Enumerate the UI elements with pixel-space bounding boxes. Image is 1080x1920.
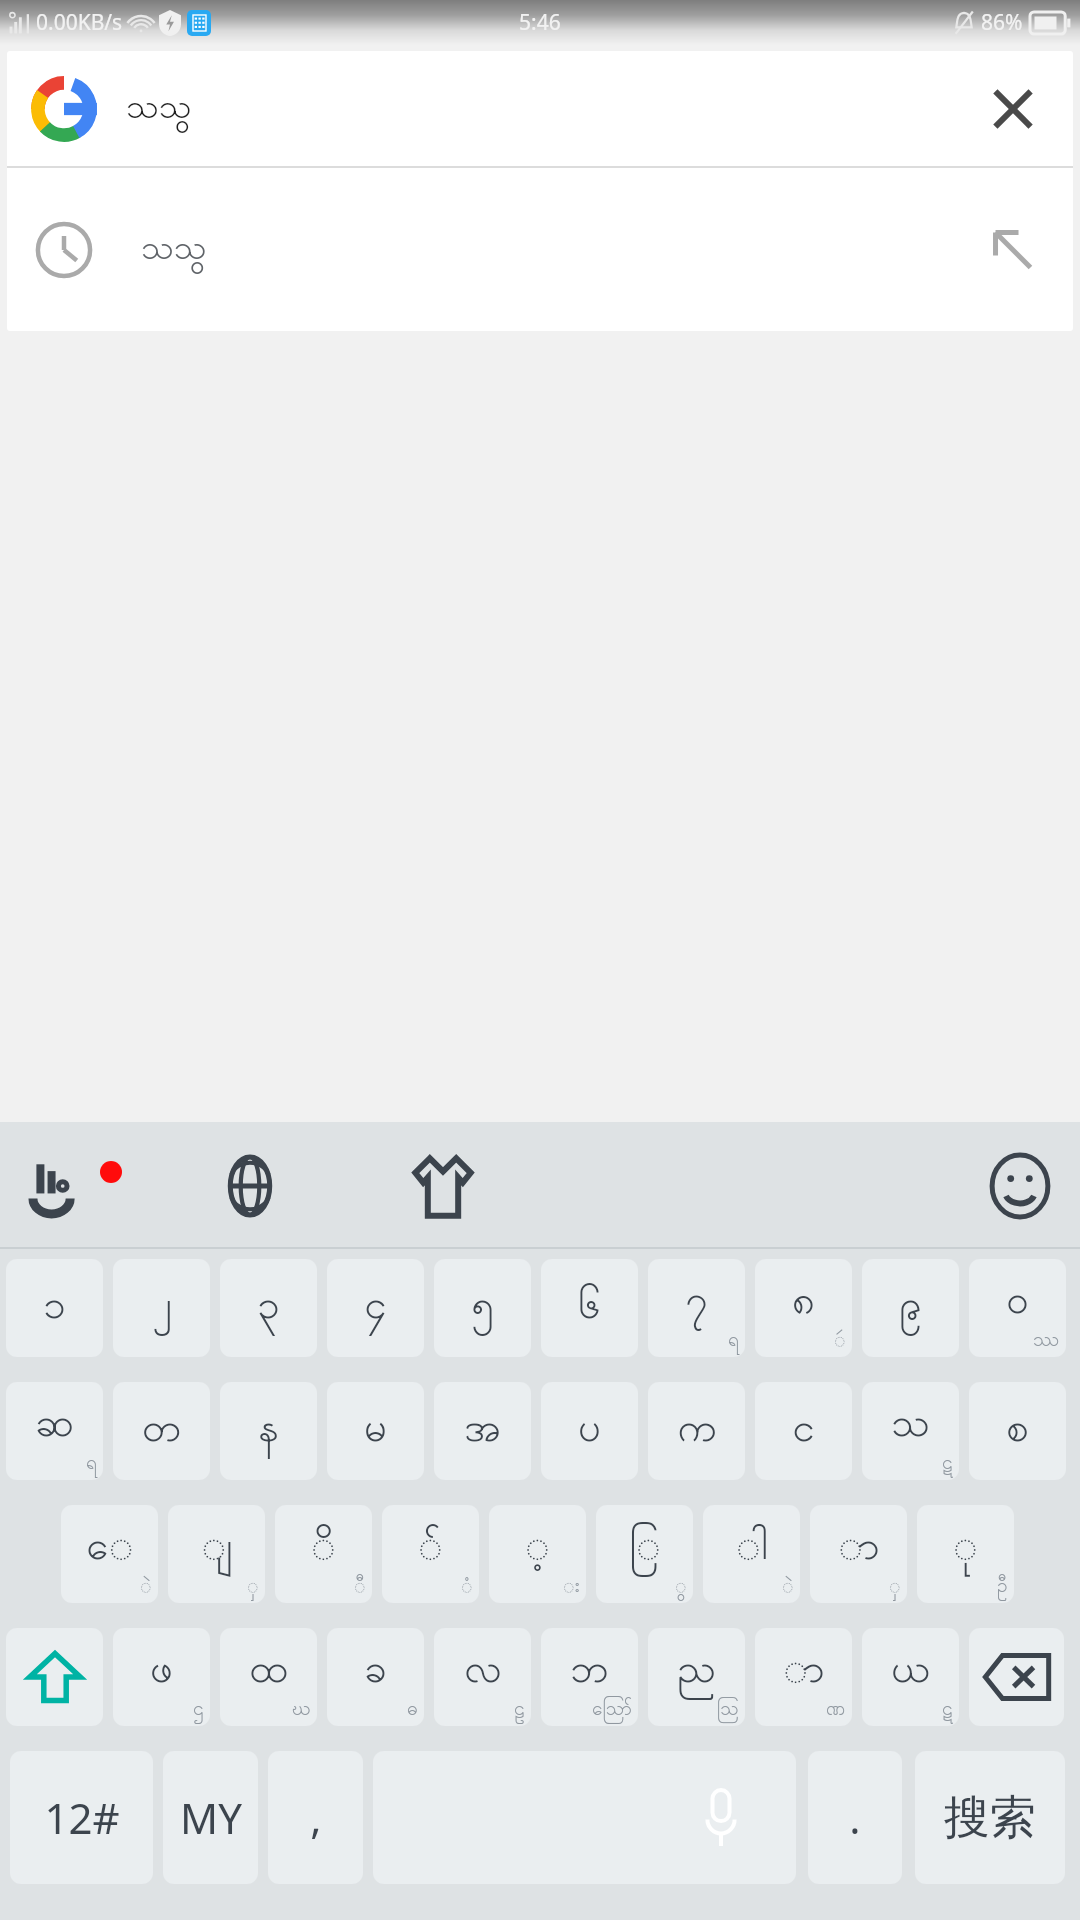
staticText: လ bbox=[464, 1643, 502, 1702]
button[interactable]: စ bbox=[969, 1382, 1066, 1480]
button[interactable]: MY bbox=[163, 1751, 258, 1884]
button[interactable]: ၈ bbox=[755, 1259, 852, 1357]
staticText: တ bbox=[142, 1402, 181, 1461]
staticText: . bbox=[849, 1789, 861, 1846]
button[interactable]: ထ bbox=[220, 1628, 317, 1726]
staticText: ၀ bbox=[1006, 1274, 1029, 1333]
staticText: ၉ bbox=[899, 1279, 922, 1338]
button[interactable]: 12# bbox=[10, 1751, 153, 1884]
button[interactable]: ယ bbox=[862, 1628, 959, 1726]
button[interactable]: ၃ bbox=[220, 1259, 317, 1357]
staticText: 5:46 bbox=[519, 8, 561, 37]
button[interactable]: ါ bbox=[703, 1505, 800, 1603]
staticText: သသွ bbox=[126, 84, 192, 134]
staticText: မ bbox=[364, 1402, 387, 1461]
staticText: ဋ bbox=[942, 1450, 953, 1478]
button[interactable]: မ bbox=[327, 1382, 424, 1480]
button[interactable]: တ bbox=[113, 1382, 210, 1480]
staticText: ၆ bbox=[578, 1279, 601, 1338]
staticText: ပ bbox=[578, 1402, 601, 1461]
staticText: ှ bbox=[889, 1573, 901, 1601]
staticText: ၅ bbox=[471, 1279, 494, 1338]
staticText: ီ bbox=[354, 1573, 366, 1601]
button[interactable]: ည bbox=[648, 1628, 745, 1726]
staticText: ၁ bbox=[43, 1279, 66, 1338]
button[interactable]: ၁ bbox=[6, 1259, 103, 1357]
button[interactable]: ့ bbox=[489, 1505, 586, 1603]
button[interactable]: ိ bbox=[275, 1505, 372, 1603]
button[interactable]: ၉ bbox=[862, 1259, 959, 1357]
button[interactable]: င bbox=[755, 1382, 852, 1480]
staticText: ဖ bbox=[150, 1643, 173, 1702]
button[interactable]: က bbox=[648, 1382, 745, 1480]
staticText: ့ bbox=[525, 1520, 550, 1579]
button[interactable]: လ bbox=[434, 1628, 531, 1726]
staticText: ခ bbox=[364, 1643, 387, 1702]
staticText: န bbox=[258, 1402, 279, 1461]
button[interactable]: ဆ bbox=[6, 1382, 103, 1480]
button[interactable]: ၂ bbox=[113, 1259, 210, 1357]
button[interactable]: ေ bbox=[61, 1505, 158, 1603]
staticText: ု bbox=[953, 1520, 978, 1579]
staticText: ာ bbox=[783, 1643, 825, 1702]
staticText: ိ bbox=[311, 1520, 336, 1579]
staticText: ည bbox=[677, 1643, 716, 1702]
button[interactable]: သသွ bbox=[7, 51, 1073, 166]
staticText: ် bbox=[418, 1520, 443, 1579]
button[interactable]: , bbox=[268, 1751, 363, 1884]
staticText: ာ bbox=[838, 1520, 880, 1579]
staticText: ွ bbox=[675, 1573, 687, 1601]
staticText: ေ bbox=[86, 1520, 134, 1579]
button[interactable]: ခ bbox=[327, 1628, 424, 1726]
button[interactable]: ၅ bbox=[434, 1259, 531, 1357]
button[interactable]: ာ bbox=[810, 1505, 907, 1603]
button[interactable]: Emoji bbox=[974, 1140, 1066, 1232]
staticText: ဩ bbox=[717, 1696, 739, 1724]
button[interactable]: ဘ bbox=[541, 1628, 638, 1726]
staticText: ၃ bbox=[257, 1279, 280, 1338]
button[interactable]: န bbox=[220, 1382, 317, 1480]
button[interactable]: ဖ bbox=[113, 1628, 210, 1726]
staticText: င bbox=[792, 1402, 815, 1461]
staticText: ၂ bbox=[152, 1279, 172, 1338]
button[interactable]: 搜索 bbox=[915, 1751, 1065, 1884]
staticText: ဪ bbox=[592, 1696, 632, 1724]
button[interactable]: ၄ bbox=[327, 1259, 424, 1357]
button[interactable]: ် bbox=[382, 1505, 479, 1603]
button[interactable]: Theme bbox=[395, 1138, 490, 1233]
staticText: 12# bbox=[44, 1789, 120, 1846]
button[interactable]: . bbox=[808, 1751, 902, 1884]
button[interactable]: ာ bbox=[755, 1628, 852, 1726]
staticText: ဴ bbox=[834, 1327, 846, 1355]
staticText: ှ bbox=[247, 1573, 259, 1601]
button[interactable]: အ bbox=[434, 1382, 531, 1480]
staticText: သသွ bbox=[141, 225, 207, 275]
button[interactable]: ြ bbox=[596, 1505, 693, 1603]
button[interactable]: ၆ bbox=[541, 1259, 638, 1357]
button[interactable]: Change language bbox=[205, 1141, 295, 1231]
staticText: ဲ bbox=[782, 1573, 794, 1601]
button[interactable]: ျ bbox=[168, 1505, 265, 1603]
staticText: ယ bbox=[891, 1643, 930, 1702]
button[interactable]: ပ bbox=[541, 1382, 638, 1480]
button[interactable]: Backspace bbox=[969, 1628, 1064, 1726]
button[interactable]: Insert suggestion bbox=[963, 200, 1063, 300]
staticText: ဠ bbox=[514, 1696, 525, 1724]
button[interactable]: ၇ bbox=[648, 1259, 745, 1357]
staticText: 0.00KB/s bbox=[36, 8, 123, 37]
staticText: ဋ bbox=[942, 1696, 953, 1724]
button[interactable]: ု bbox=[917, 1505, 1014, 1603]
staticText: ဆ bbox=[35, 1397, 74, 1456]
button[interactable]: ၀ bbox=[969, 1259, 1066, 1357]
staticText: ြ bbox=[629, 1520, 661, 1579]
button[interactable]: Shift bbox=[6, 1628, 103, 1726]
staticText: ဲ bbox=[140, 1573, 152, 1601]
button[interactable]: Handwriting input bbox=[14, 1141, 104, 1231]
button[interactable]: သသွ bbox=[7, 168, 1073, 331]
button[interactable]: Clear query bbox=[963, 59, 1063, 159]
staticText: ရ bbox=[86, 1450, 97, 1478]
staticText: 86% bbox=[981, 8, 1023, 37]
staticText: ၈ bbox=[792, 1274, 815, 1333]
button[interactable]: သ bbox=[862, 1382, 959, 1480]
